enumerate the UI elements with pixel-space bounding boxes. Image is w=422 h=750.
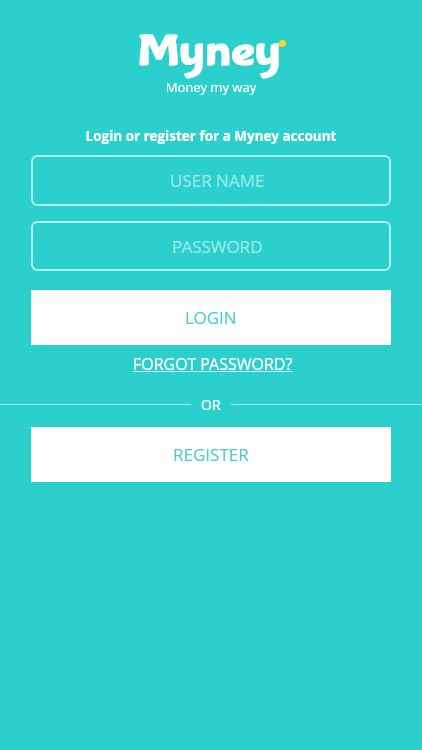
staticText: PASSWORD	[172, 235, 263, 258]
staticText: USER NAME	[170, 169, 265, 192]
staticText: Login or register for a Myney account	[0, 127, 422, 145]
staticText: Myney	[138, 27, 281, 78]
button[interactable]: LOGIN	[31, 290, 391, 345]
button[interactable]: USER NAME	[31, 155, 391, 206]
staticText: Myney	[138, 27, 281, 78]
staticText: Money my way	[0, 78, 422, 96]
button[interactable]: FORGOT PASSWORD?	[0, 351, 422, 377]
staticText: FORGOT PASSWORD?	[133, 353, 293, 375]
staticText: REGISTER	[173, 443, 249, 466]
staticText: LOGIN	[185, 306, 237, 329]
staticText: OR	[201, 395, 221, 414]
button[interactable]: PASSWORD	[31, 221, 391, 271]
button[interactable]: REGISTER	[31, 427, 391, 482]
